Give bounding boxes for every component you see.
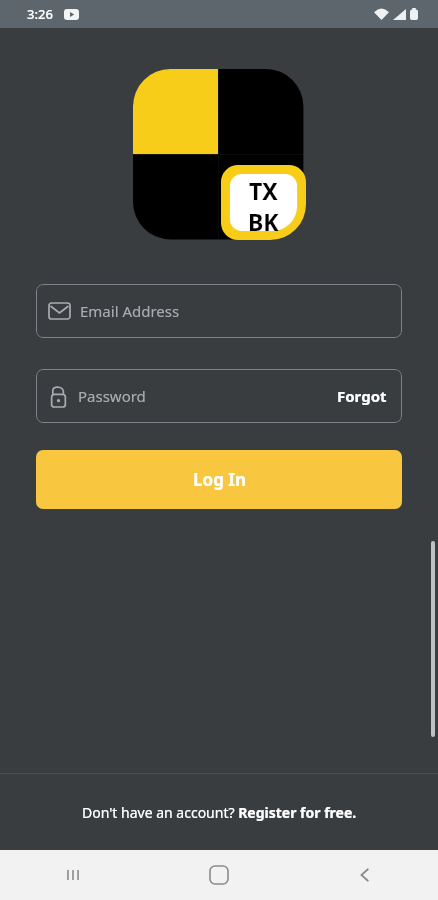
staticText: 3:26 bbox=[27, 5, 53, 23]
button[interactable]: Home bbox=[146, 850, 292, 900]
button[interactable]: Forgot bbox=[335, 382, 389, 410]
staticText: Forgot bbox=[337, 386, 387, 406]
button[interactable]: Back bbox=[292, 850, 438, 900]
staticText: BK bbox=[248, 206, 279, 237]
button[interactable]: Don't have an account? Register for free… bbox=[0, 774, 438, 850]
staticText: Log In bbox=[193, 468, 246, 491]
staticText: TX bbox=[249, 175, 278, 206]
staticText: Email Address bbox=[80, 301, 180, 321]
button[interactable]: Log In bbox=[36, 450, 402, 509]
button[interactable]: Password bbox=[36, 369, 402, 423]
button[interactable]: Recent apps bbox=[0, 850, 146, 900]
button[interactable]: Email Address bbox=[36, 284, 402, 338]
staticText: Don't have an account? Register for free… bbox=[82, 803, 357, 822]
staticText: Password bbox=[78, 386, 146, 406]
